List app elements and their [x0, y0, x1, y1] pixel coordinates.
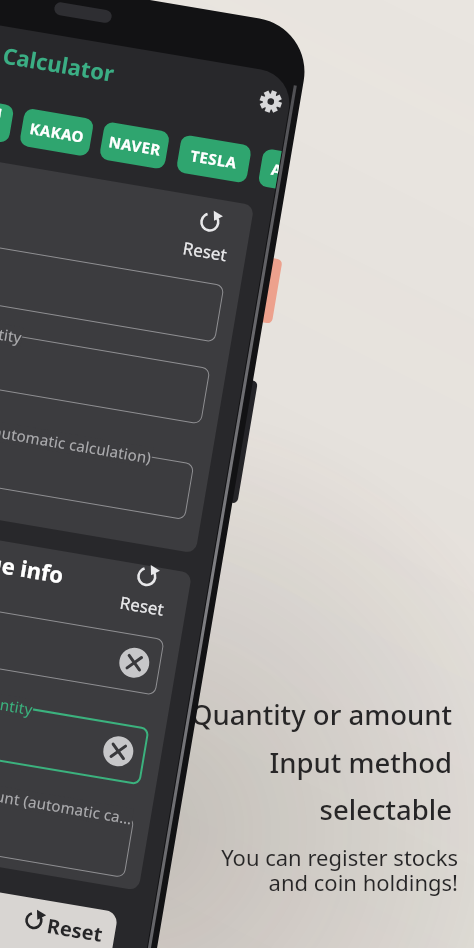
staticText: Total quantity — [0, 683, 35, 719]
staticText: Total amount (automatic ca… — [0, 774, 134, 828]
button[interactable] — [117, 645, 152, 680]
button[interactable]: SAMSUNG — [0, 93, 14, 143]
button[interactable] — [0, 684, 150, 785]
staticText: Average info — [0, 537, 66, 589]
staticText: Quantity — [0, 317, 24, 347]
staticText: KAKAO — [28, 118, 86, 147]
button[interactable] — [0, 420, 194, 520]
button[interactable] — [244, 76, 293, 126]
staticText: Amount (automatic calculation) — [0, 410, 153, 468]
staticText: Average Calculator — [0, 23, 117, 88]
button[interactable]: TESLA — [176, 134, 252, 184]
button[interactable] — [0, 774, 134, 878]
staticText: You can register stocks and coin holding… — [0, 842, 458, 922]
button[interactable] — [0, 596, 165, 696]
button[interactable]: APPLE — [258, 148, 282, 189]
button[interactable] — [101, 734, 136, 769]
staticText: APPLE — [270, 159, 280, 180]
button[interactable]: Reset — [175, 235, 234, 268]
button[interactable]: Reset — [112, 590, 171, 623]
staticText: Quantity or amount Input method selectab… — [0, 696, 452, 846]
button[interactable] — [0, 325, 210, 424]
staticText: NAVER — [107, 131, 163, 160]
button[interactable]: NAVER — [99, 121, 170, 170]
button[interactable] — [0, 876, 118, 948]
staticText: SAMSUNG — [0, 93, 14, 143]
staticText: Reset — [45, 912, 105, 948]
button[interactable]: KAKAO — [19, 108, 94, 157]
staticText: TESLA — [189, 145, 239, 173]
button[interactable] — [0, 242, 224, 343]
